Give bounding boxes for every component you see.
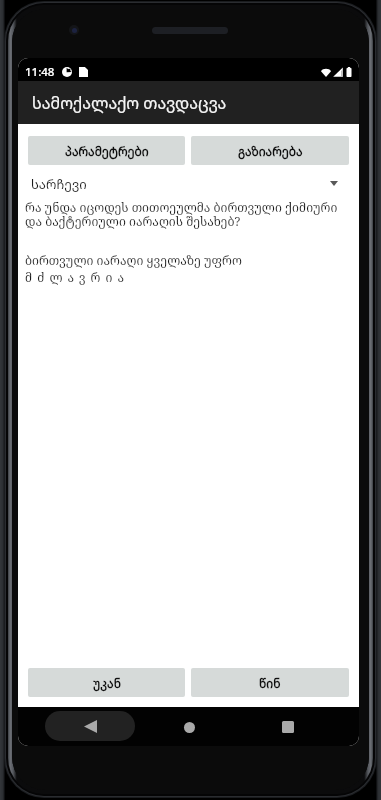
button[interactable]: სარჩევი: [28, 171, 349, 196]
button[interactable]: Back: [45, 711, 135, 741]
staticText: უკან: [93, 675, 121, 691]
staticText: 11:48: [25, 64, 55, 80]
button[interactable]: უკან: [28, 668, 185, 697]
button[interactable]: წინ: [191, 668, 349, 697]
staticText: ბირთვული იარაღი ყველაზე უფრო: [25, 252, 242, 269]
staticText: რა უნდა იცოდეს თითოეულმა ბირთვული ქიმიურ…: [25, 199, 338, 230]
staticText: წინ: [259, 675, 281, 691]
staticText: მძლავრია: [25, 269, 129, 286]
staticText: სარჩევი: [31, 175, 87, 193]
button[interactable]: პარამეტრები: [28, 136, 185, 165]
staticText: გაზიარება: [238, 143, 303, 159]
button[interactable]: გაზიარება: [191, 136, 349, 165]
button[interactable]: Home: [171, 709, 207, 745]
staticText: სამოქალაქო თავდაცვა: [32, 92, 227, 114]
staticText: პარამეტრები: [65, 143, 149, 159]
button[interactable]: Recent apps: [270, 709, 306, 745]
